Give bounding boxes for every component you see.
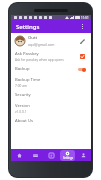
button[interactable]: Outt [11,33,91,49]
staticText: Settings [16,23,40,31]
staticText: Ask for passkey when app opens [15,58,64,62]
staticText: Backup [15,66,30,72]
button[interactable]: Backup [11,63,91,75]
button[interactable]: Backup Time [11,75,91,89]
staticText: v1.0.0.1 [15,110,27,114]
staticText: Security [15,92,31,98]
staticText: Outt [28,35,38,41]
button[interactable]: Profile [75,149,91,161]
button[interactable]: Security [11,89,91,101]
button[interactable]: More options [77,21,88,32]
staticText: About Us [15,118,34,124]
staticText: 11:51 [81,16,89,20]
button[interactable]: Ask Passkey [11,49,91,63]
button[interactable]: Notes [43,149,59,161]
button[interactable]: Home [11,149,27,161]
button[interactable]: Settings [59,149,75,161]
staticText: Settings [63,156,73,160]
button[interactable]: Version [11,101,91,115]
button[interactable]: Backup toggle [76,65,87,74]
staticText: 7:00 am [15,84,27,88]
button[interactable]: Edit account [78,37,87,46]
staticText: Version [15,103,30,109]
staticText: oqxl@gmail.com [28,42,55,47]
button[interactable]: Ask passkey checkbox [78,52,87,61]
button[interactable]: About Us [11,115,91,127]
staticText: Ask Passkey [15,51,39,57]
button[interactable]: Cards [27,149,43,161]
staticText: Backup Time [15,77,41,83]
